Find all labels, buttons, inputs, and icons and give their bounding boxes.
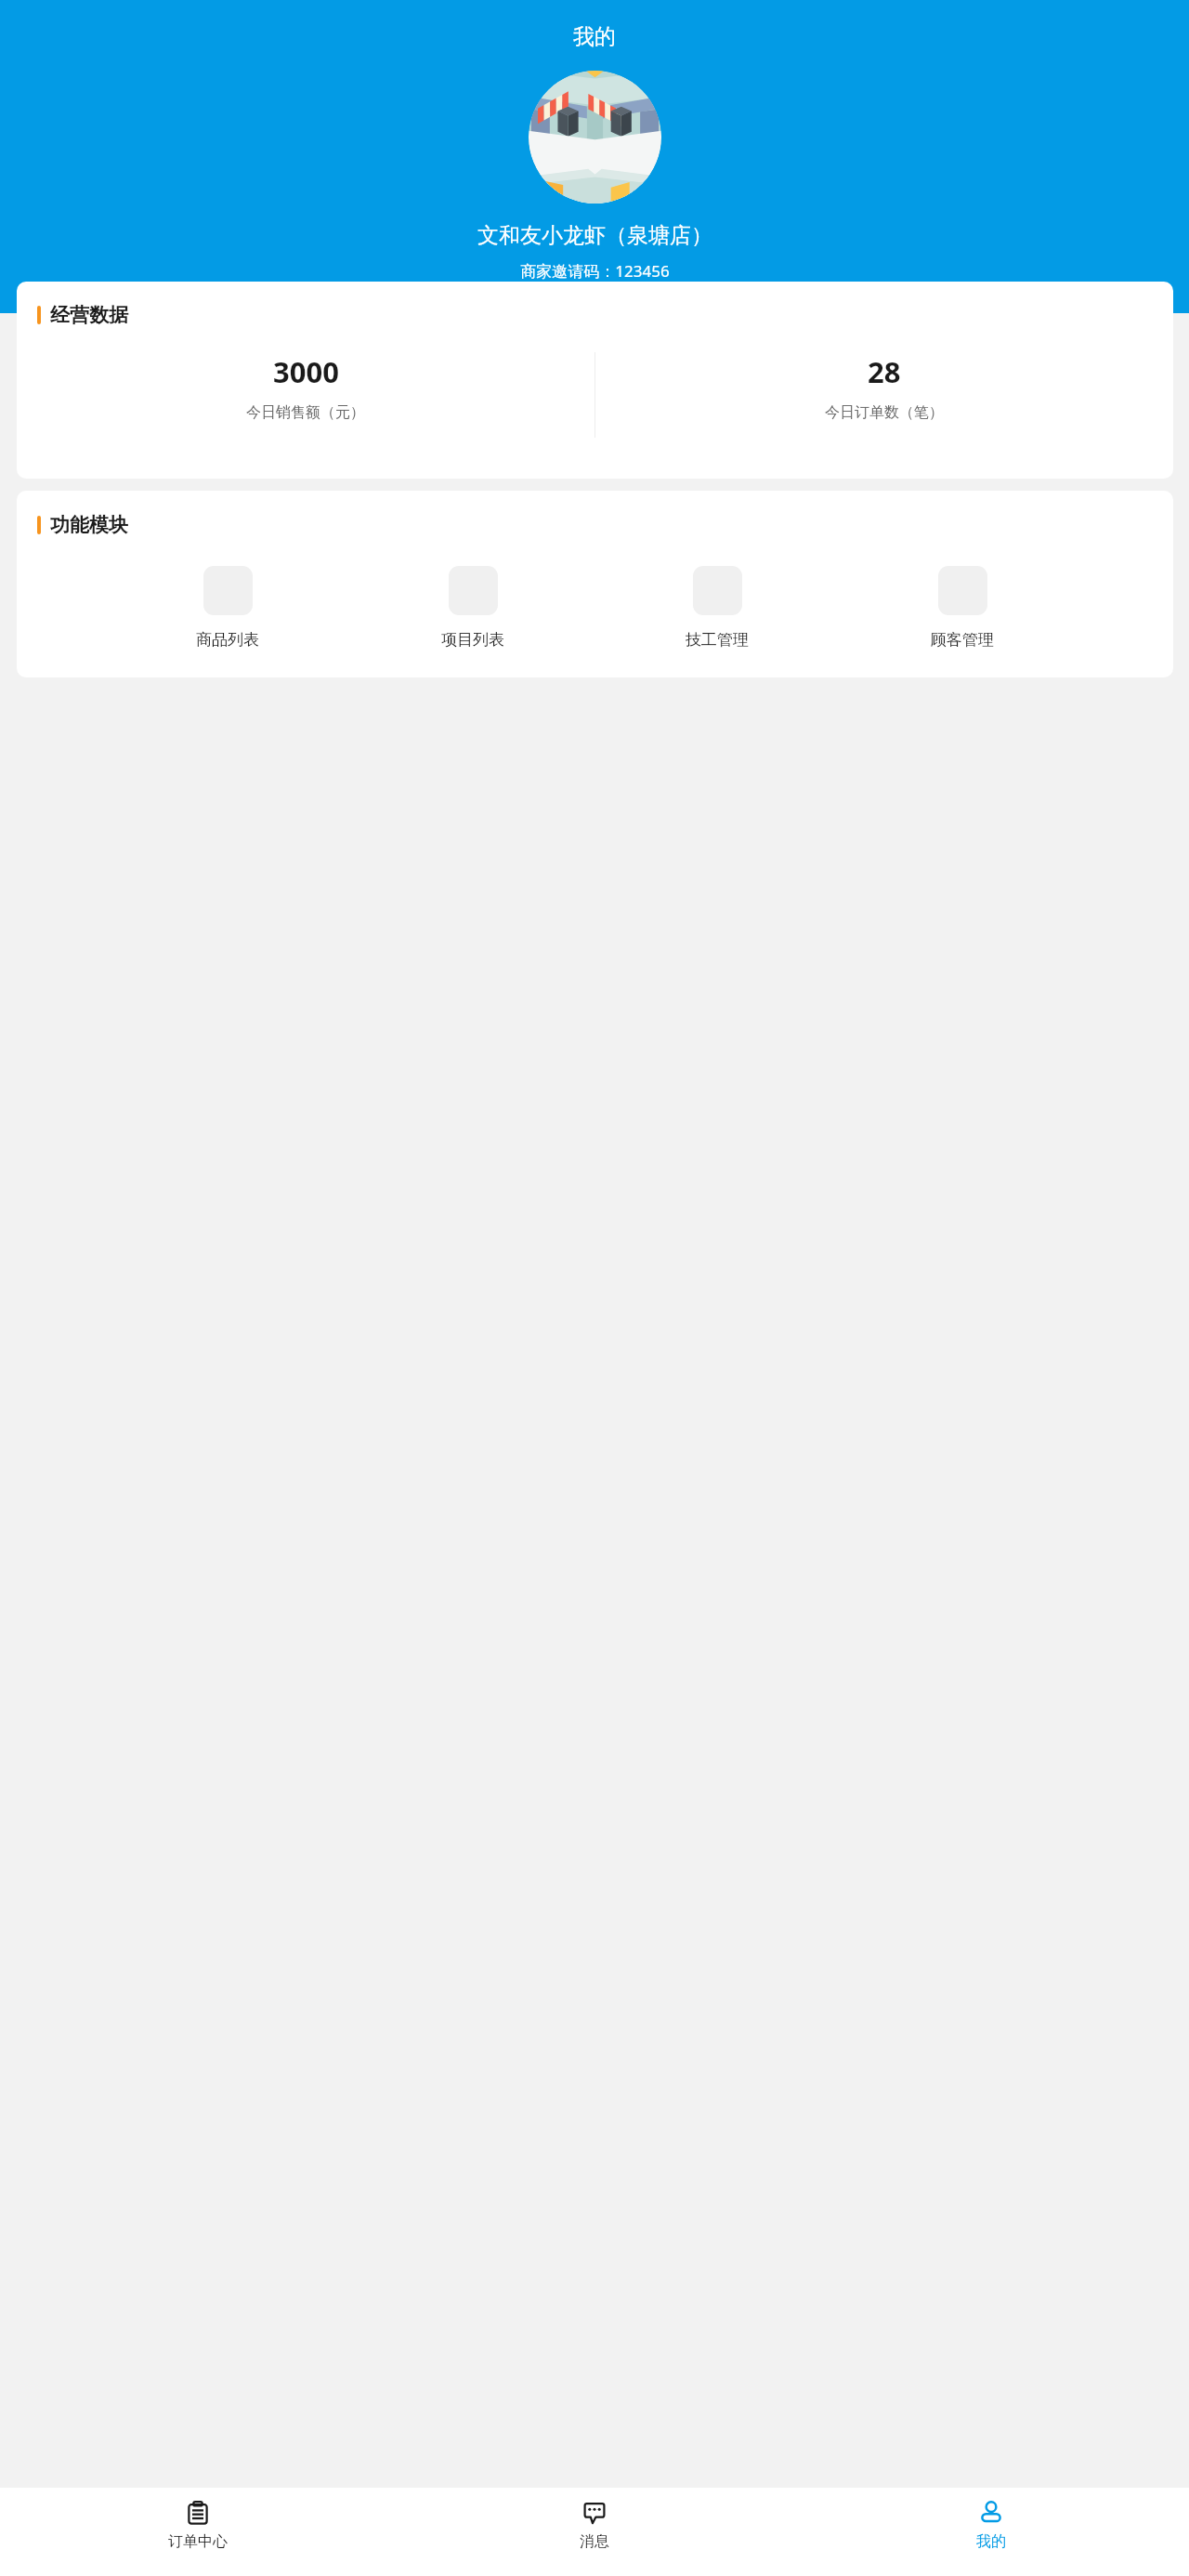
button[interactable]: 我的 [792, 2488, 1189, 2551]
staticText: 今日订单数（笔） [825, 403, 944, 422]
button[interactable]: 3000 [17, 352, 594, 422]
staticText: 技工管理 [686, 630, 749, 650]
staticText: 项目列表 [441, 630, 504, 650]
button[interactable]: 28 [595, 352, 1173, 422]
staticText: 消息 [580, 2532, 609, 2551]
staticText: 文和友小龙虾（泉塘店） [477, 222, 712, 249]
staticText: 28 [868, 352, 901, 391]
button[interactable]: 技工管理 [672, 566, 763, 650]
staticText: 我的 [976, 2532, 1006, 2551]
staticText: 商品列表 [196, 630, 259, 650]
button[interactable]: 消息 [396, 2488, 792, 2551]
staticText: 功能模块 [50, 513, 128, 537]
staticText: 商家邀请码：123456 [520, 260, 670, 282]
button[interactable]: 店铺头像 [529, 71, 661, 204]
staticText: 顾客管理 [931, 630, 994, 650]
button[interactable]: 商品列表 [182, 566, 273, 650]
staticText: 订单中心 [168, 2532, 228, 2551]
staticText: 3000 [273, 352, 339, 391]
button[interactable]: 项目列表 [427, 566, 518, 650]
button[interactable]: 顾客管理 [917, 566, 1008, 650]
staticText: 经营数据 [50, 303, 128, 327]
staticText: 我的 [573, 23, 616, 50]
staticText: 今日销售额（元） [246, 403, 365, 422]
button[interactable]: 订单中心 [0, 2488, 396, 2551]
